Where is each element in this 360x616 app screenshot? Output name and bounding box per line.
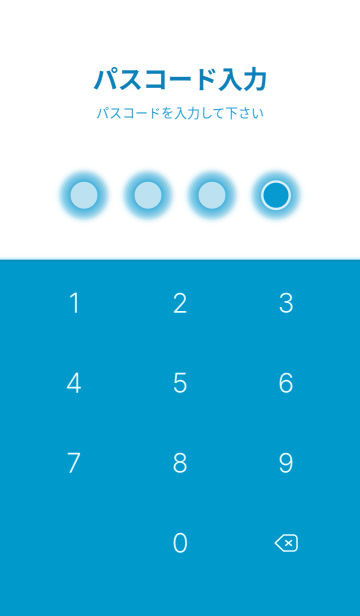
button[interactable]: 1	[21, 263, 127, 343]
staticText: 5	[172, 367, 187, 399]
staticText: パスコードを入力して下さい	[96, 103, 264, 121]
button[interactable]: 7	[21, 423, 127, 503]
button[interactable]: 3	[233, 263, 339, 343]
button[interactable]: 4	[21, 343, 127, 423]
staticText: 1	[69, 287, 79, 319]
button[interactable]: Delete	[233, 503, 339, 583]
button[interactable]: 2	[127, 263, 233, 343]
staticText: 0	[172, 527, 188, 559]
staticText: 6	[278, 367, 294, 399]
button[interactable]: 9	[233, 423, 339, 503]
button[interactable]: 0	[127, 503, 233, 583]
staticText: 8	[172, 447, 188, 479]
button[interactable]: 5	[127, 343, 233, 423]
button[interactable]: 8	[127, 423, 233, 503]
staticText: 4	[65, 367, 82, 399]
staticText: 9	[278, 447, 294, 479]
staticText: 2	[172, 287, 188, 319]
button[interactable]: 6	[233, 343, 339, 423]
staticText: パスコード入力	[92, 59, 267, 96]
staticText: 3	[278, 287, 294, 319]
staticText: 7	[66, 447, 81, 479]
